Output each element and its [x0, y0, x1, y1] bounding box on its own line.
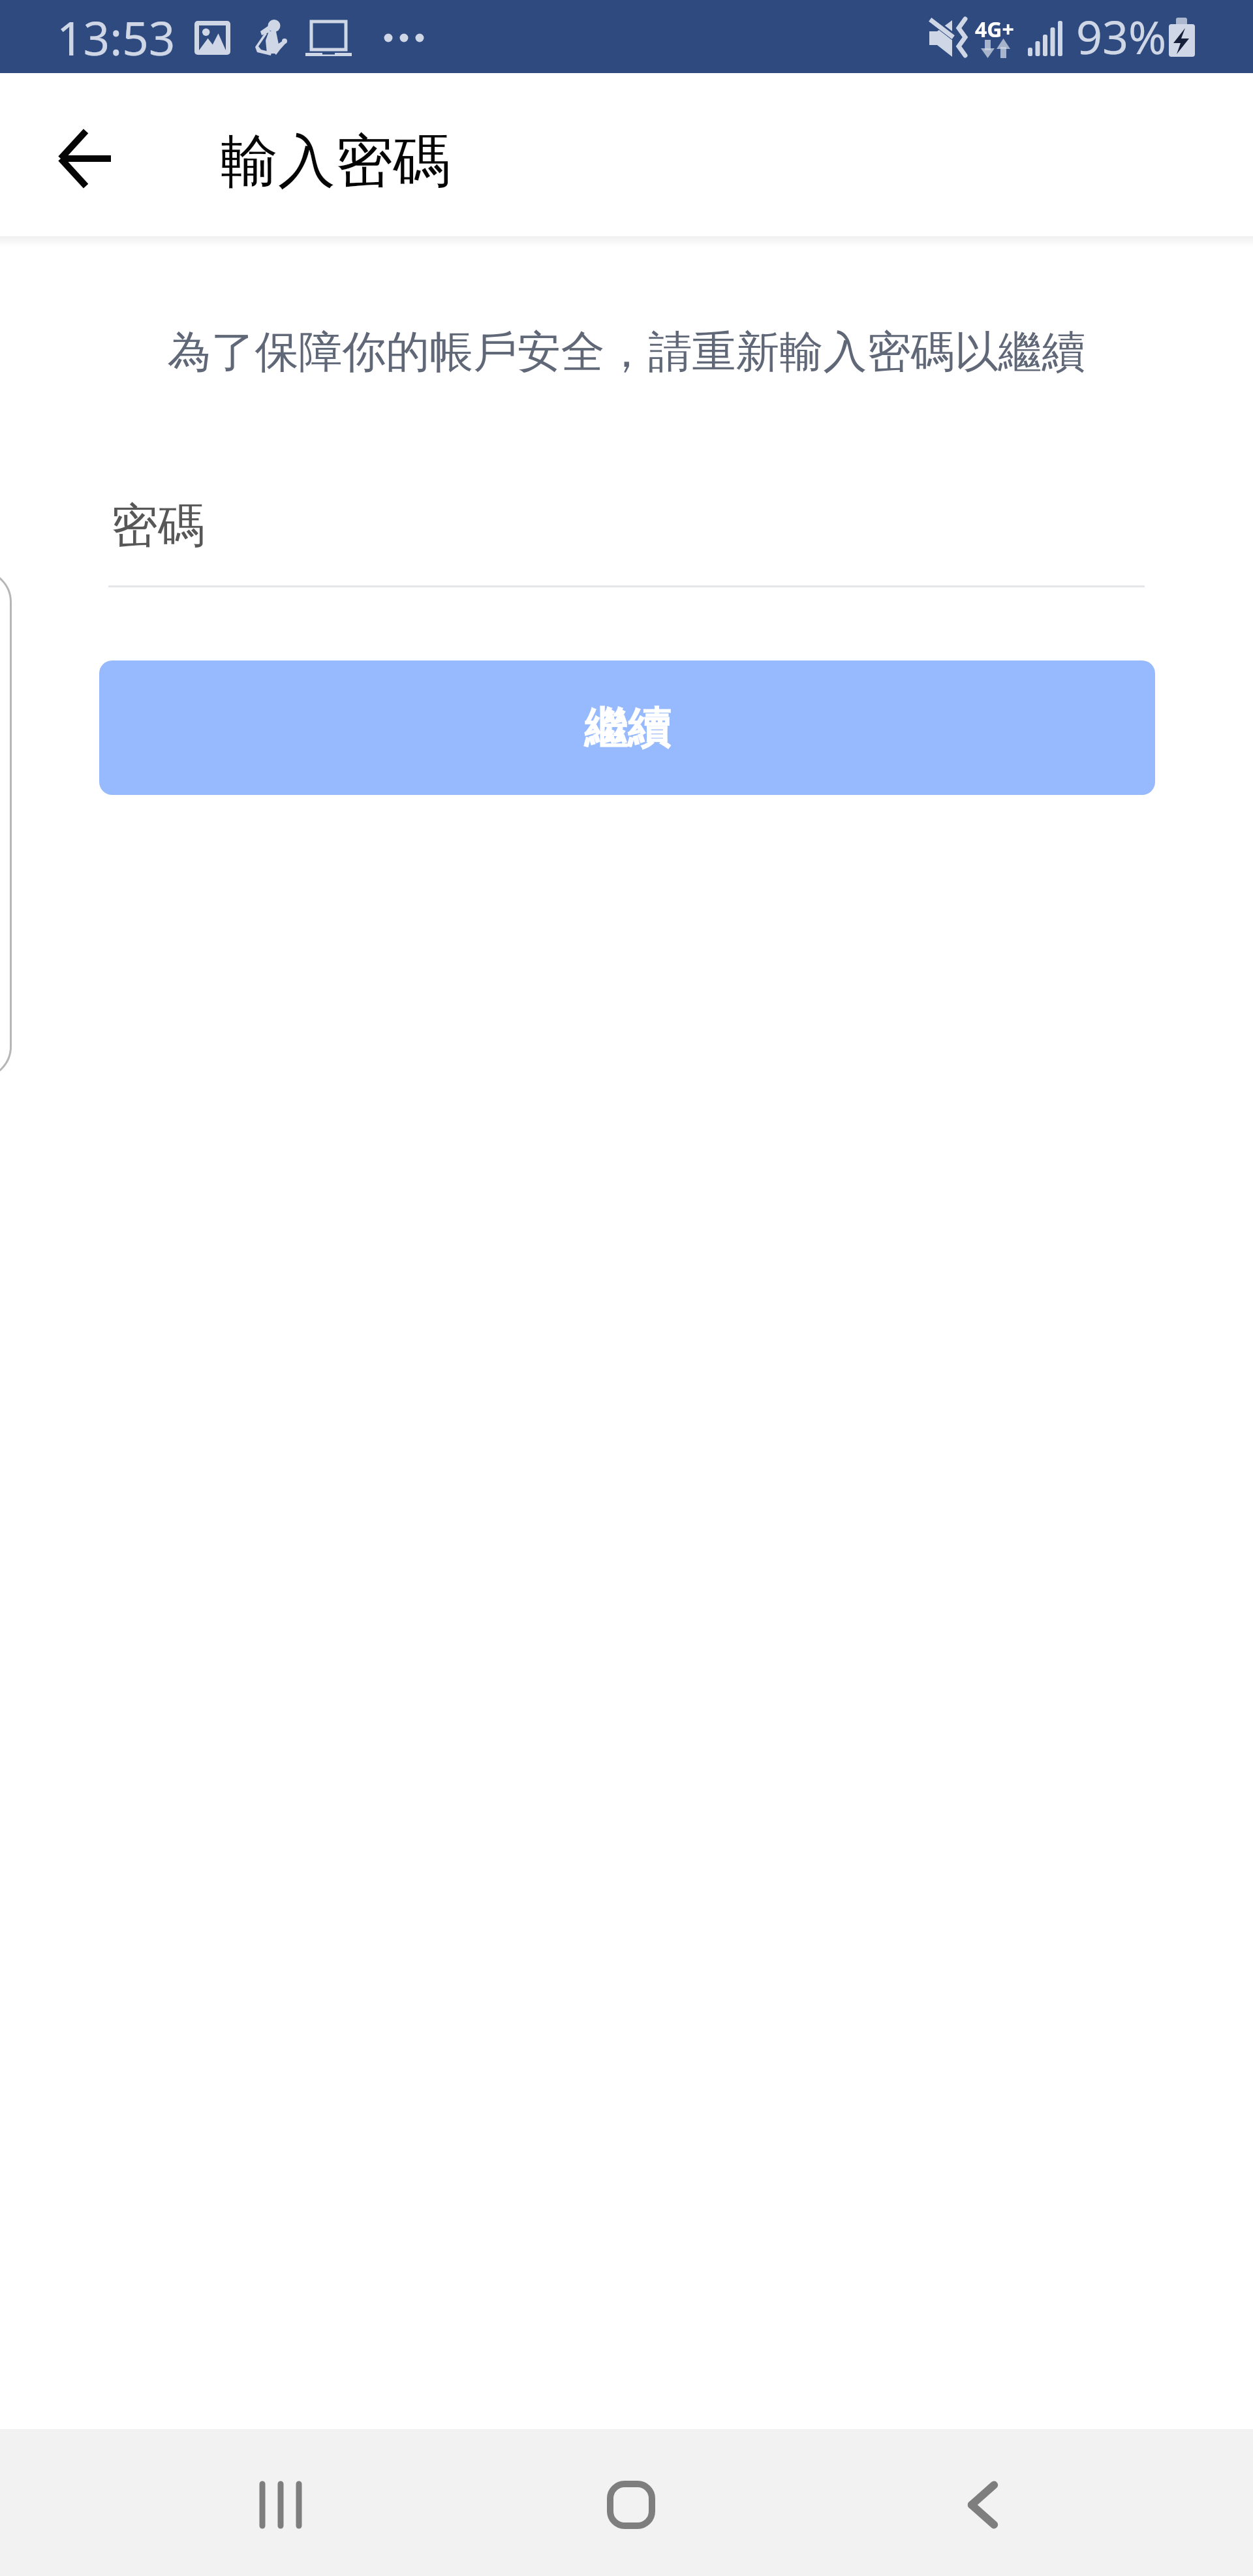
button[interactable]: Back [920, 2443, 1044, 2567]
button[interactable]: 密碼 [108, 483, 1145, 587]
button[interactable]: Home [569, 2443, 693, 2567]
button[interactable]: 繼續 [99, 660, 1155, 795]
staticText: 為了保障你的帳戶安全，請重新輸入密碼以繼續 [0, 324, 1253, 379]
staticText: 13:53 [57, 6, 176, 69]
staticText: 4G+ [975, 15, 1014, 44]
button[interactable]: Recent apps [219, 2443, 343, 2567]
button[interactable]: Back [36, 121, 134, 196]
staticText: 繼續 [584, 701, 670, 755]
staticText: 密碼 [111, 497, 205, 556]
staticText: 輸入密碼 [221, 125, 450, 198]
staticText: 93% [1076, 5, 1167, 67]
